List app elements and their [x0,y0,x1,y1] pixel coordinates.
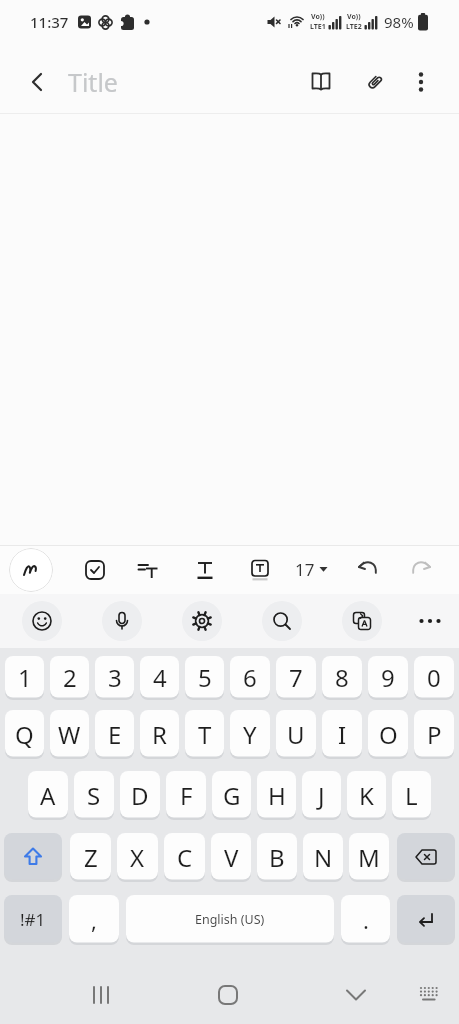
button[interactable] [355,557,381,583]
staticText: E [108,718,122,751]
button[interactable] [83,558,107,582]
button[interactable]: 1 [5,656,44,699]
staticText: H [268,779,286,812]
button[interactable]: S [74,771,114,819]
button[interactable] [397,895,455,944]
button[interactable]: 2 [50,656,89,699]
button[interactable]: Title [68,65,118,99]
staticText: LTE1 [310,22,326,32]
button[interactable]: English (US) [126,895,334,944]
button[interactable]: N [303,833,343,881]
button[interactable]: I [322,710,362,758]
button[interactable]: J [302,771,341,819]
staticText: Vo)) [347,12,361,22]
staticText: T [198,718,212,751]
button[interactable]: L [392,771,431,819]
button[interactable]: A [28,771,68,819]
button[interactable] [18,62,58,102]
staticText: 2 [63,661,77,694]
button[interactable] [363,70,387,94]
button[interactable] [102,601,142,641]
button[interactable]: G [212,771,251,819]
button[interactable]: V [211,833,251,881]
button[interactable]: 0 [414,656,454,699]
button[interactable]: 8 [322,656,362,699]
staticText: 3 [108,661,122,694]
button[interactable] [248,558,272,582]
staticText: A [40,779,56,812]
button[interactable]: 6 [230,656,270,699]
button[interactable] [408,557,434,583]
button[interactable] [9,548,53,592]
button[interactable]: U [276,710,316,758]
button[interactable]: T [185,710,224,758]
staticText: 5 [198,661,212,694]
button[interactable]: B [257,833,297,881]
button[interactable]: H [257,771,296,819]
button[interactable] [136,558,160,582]
button[interactable]: 3 [95,656,134,699]
staticText: Z [84,841,98,874]
staticText: Vo)) [311,12,325,22]
button[interactable] [306,974,459,1008]
staticText: 11:37 [30,12,69,32]
staticText: !#1 [20,908,46,931]
staticText: L [405,779,418,812]
button[interactable]: O [368,710,408,758]
button[interactable]: , [69,895,119,944]
staticText: English (US) [195,911,265,928]
button[interactable]: R [140,710,179,758]
button[interactable] [4,833,62,881]
button[interactable]: Z [70,833,111,881]
button[interactable] [409,70,433,94]
staticText: 9 [381,661,395,694]
staticText: J [318,779,325,812]
staticText: Title [68,65,118,99]
button[interactable]: W [50,710,89,758]
button[interactable]: D [120,771,160,819]
button[interactable]: K [347,771,386,819]
staticText: B [269,841,285,874]
staticText: 17 [295,558,315,581]
staticText: I [338,718,347,751]
button[interactable]: !#1 [4,895,62,944]
button[interactable] [397,833,455,881]
button[interactable]: 17 [295,558,328,581]
button[interactable]: X [117,833,158,881]
staticText: X [130,841,145,874]
button[interactable]: 9 [368,656,408,699]
staticText: 0 [427,661,441,694]
staticText: 8 [335,661,349,694]
button[interactable] [153,974,306,1008]
button[interactable] [193,558,217,582]
button[interactable]: P [414,710,454,758]
staticText: , [91,905,97,935]
staticText: K [359,779,374,812]
button[interactable]: E [95,710,134,758]
button[interactable] [182,601,222,641]
staticText: 7 [289,661,303,694]
staticText: S [87,779,101,812]
button[interactable]: 7 [276,656,316,699]
button[interactable]: . [341,895,390,944]
button[interactable]: Y [230,710,270,758]
staticText: M [358,841,380,874]
staticText: 1 [18,661,32,694]
staticText: U [287,718,305,751]
button[interactable] [22,601,62,641]
button[interactable]: 5 [185,656,224,699]
button[interactable]: 4 [140,656,179,699]
staticText: R [152,718,167,751]
button[interactable]: M [349,833,389,881]
button[interactable] [309,70,333,94]
button[interactable] [342,601,382,641]
button[interactable] [418,609,442,633]
staticText: 98% [384,12,414,32]
staticText: F [180,779,193,812]
staticText: C [177,841,193,874]
button[interactable] [262,601,302,641]
button[interactable]: F [166,771,206,819]
button[interactable]: Q [5,710,44,758]
button[interactable] [0,974,153,1008]
button[interactable]: C [164,833,205,881]
